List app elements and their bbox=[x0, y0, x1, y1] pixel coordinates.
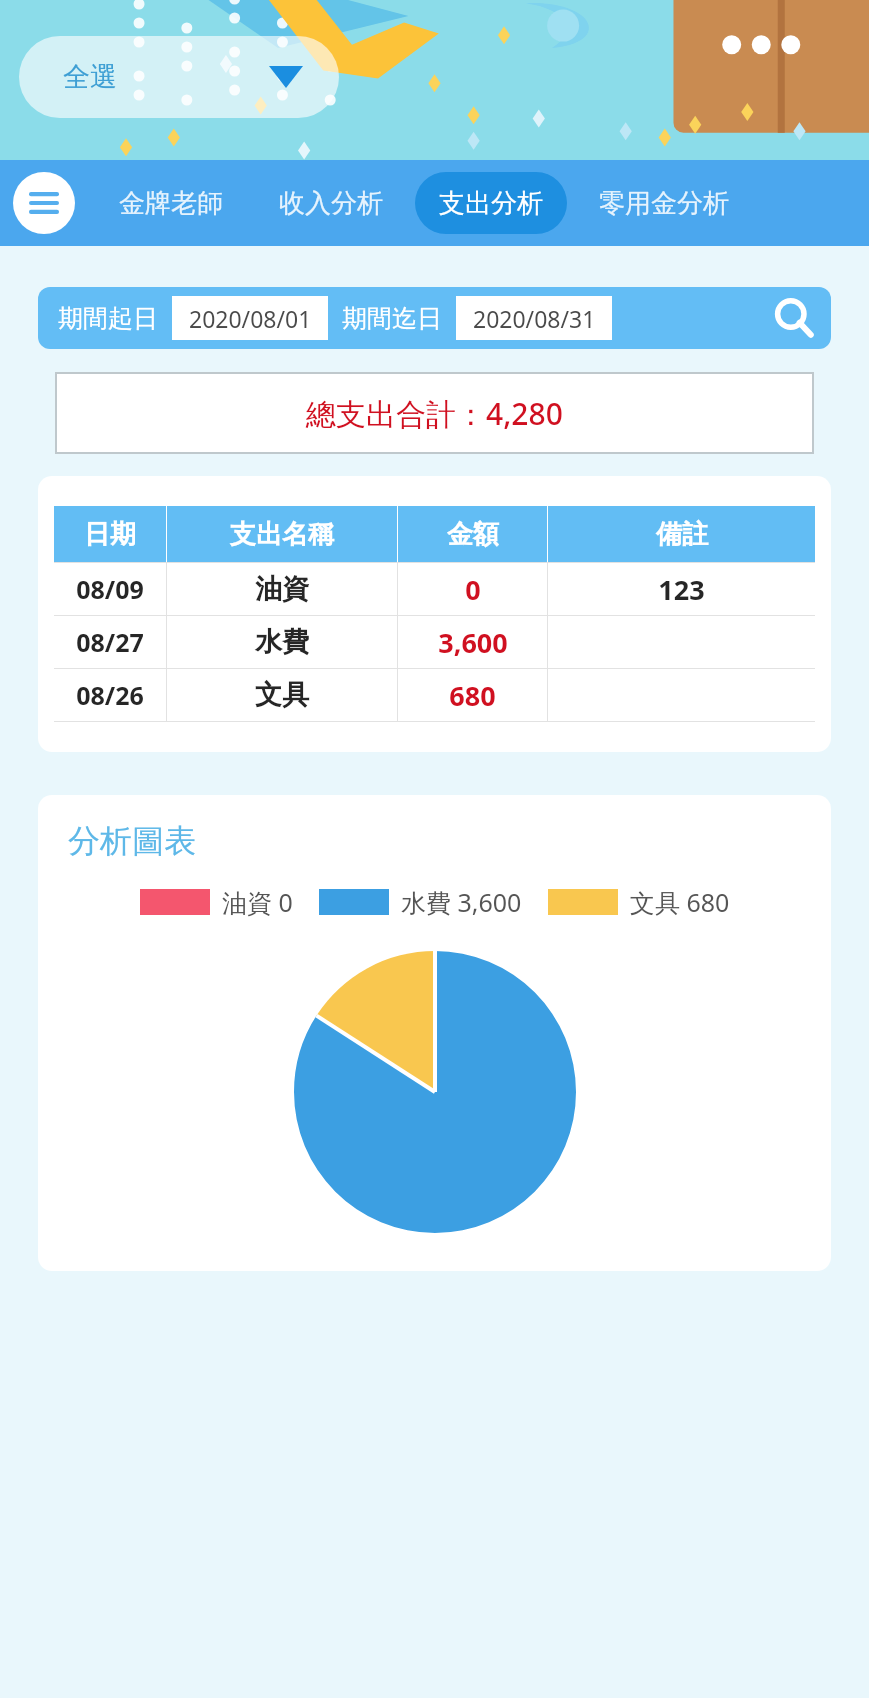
button[interactable]: 油資 0 bbox=[140, 885, 293, 919]
staticText: 油資 0 bbox=[222, 885, 293, 919]
staticText: 支出分析 bbox=[439, 187, 543, 220]
staticText: 08/26 bbox=[76, 678, 144, 712]
staticText: 水費 bbox=[255, 625, 309, 659]
button[interactable]: 文具 680 bbox=[548, 885, 730, 919]
staticText: 金額 bbox=[447, 518, 499, 551]
staticText: 08/27 bbox=[76, 625, 144, 659]
staticText: 期間起日 bbox=[58, 303, 158, 334]
staticText: 123 bbox=[658, 571, 705, 608]
staticText: 2020/08/31 bbox=[473, 303, 596, 334]
button[interactable]: 期間起日 bbox=[38, 287, 831, 349]
staticText: 全選 bbox=[63, 60, 117, 94]
staticText: 文具 bbox=[255, 678, 309, 712]
button[interactable]: 全選 bbox=[19, 36, 339, 118]
button[interactable]: Search bbox=[765, 289, 823, 347]
staticText: 日期 bbox=[84, 518, 136, 551]
staticText: 收入分析 bbox=[279, 187, 383, 220]
staticText: 2020/08/01 bbox=[189, 303, 312, 334]
staticText: 680 bbox=[449, 677, 496, 714]
staticText: 期間迄日 bbox=[342, 303, 442, 334]
staticText: 零用金分析 bbox=[599, 187, 729, 220]
button[interactable]: 金牌老師 bbox=[95, 172, 247, 234]
staticText: 08/09 bbox=[76, 572, 144, 606]
button[interactable]: 水費 3,600 bbox=[319, 885, 522, 919]
button[interactable]: 08/09 bbox=[54, 563, 815, 615]
button[interactable]: 總支出合計：4,280 bbox=[57, 374, 812, 452]
staticText: 支出名稱 bbox=[230, 518, 334, 551]
button[interactable]: 08/26 bbox=[54, 669, 815, 721]
button[interactable]: Menu bbox=[13, 172, 75, 234]
staticText: 文具 680 bbox=[630, 885, 730, 919]
staticText: 3,600 bbox=[438, 624, 508, 661]
button[interactable]: 收入分析 bbox=[255, 172, 407, 234]
staticText: 0 bbox=[465, 571, 481, 608]
button[interactable]: 零用金分析 bbox=[575, 172, 753, 234]
staticText: 總支出合計：4,280 bbox=[306, 393, 563, 434]
staticText: 分析圖表 bbox=[68, 821, 196, 861]
staticText: 油資 bbox=[255, 572, 309, 606]
button[interactable]: 支出分析 bbox=[415, 172, 567, 234]
staticText: 金牌老師 bbox=[119, 187, 223, 220]
button[interactable]: 08/27 bbox=[54, 616, 815, 668]
staticText: 備註 bbox=[656, 518, 708, 551]
staticText: 水費 3,600 bbox=[401, 885, 522, 919]
